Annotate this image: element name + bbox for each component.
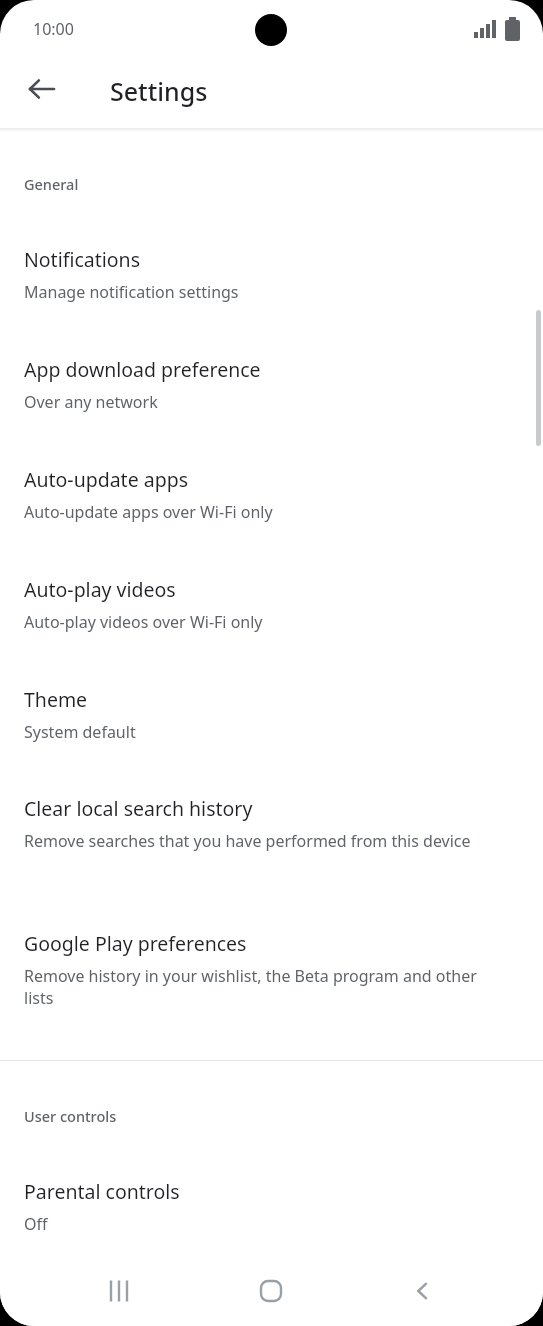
- staticText: Auto-play videos: [24, 576, 176, 603]
- staticText: Notifications: [24, 246, 140, 273]
- staticText: Theme: [24, 686, 88, 713]
- staticText: Remove history in your wishlist, the Bet…: [24, 965, 494, 1009]
- button[interactable]: Google Play preferences: [0, 920, 543, 1030]
- button[interactable]: Home: [236, 1256, 306, 1326]
- staticText: Settings: [110, 74, 208, 108]
- staticText: User controls: [24, 1106, 117, 1126]
- staticText: Auto-update apps over Wi-Fi only: [24, 501, 273, 523]
- button[interactable]: Back: [16, 63, 68, 115]
- button[interactable]: App download preference: [0, 346, 543, 456]
- staticText: General: [24, 174, 79, 194]
- button[interactable]: Auto-update apps: [0, 456, 543, 566]
- button[interactable]: Notifications: [0, 236, 543, 346]
- staticText: Remove searches that you have performed …: [24, 830, 471, 852]
- staticText: App download preference: [24, 356, 261, 383]
- staticText: Auto-update apps: [24, 466, 188, 493]
- staticText: Google Play preferences: [24, 930, 247, 957]
- staticText: Clear local search history: [24, 795, 253, 822]
- staticText: Auto-play videos over Wi-Fi only: [24, 611, 263, 633]
- button[interactable]: Clear local search history: [0, 785, 543, 895]
- staticText: 10:00: [33, 18, 74, 40]
- staticText: Off: [24, 1213, 48, 1235]
- staticText: Manage notification settings: [24, 281, 239, 303]
- button[interactable]: Parental controls: [0, 1168, 543, 1278]
- staticText: Over any network: [24, 391, 158, 413]
- button[interactable]: Auto-play videos: [0, 566, 543, 676]
- staticText: System default: [24, 721, 136, 743]
- button[interactable]: Recent apps: [85, 1256, 155, 1326]
- staticText: Parental controls: [24, 1178, 180, 1205]
- button[interactable]: Back: [388, 1256, 458, 1326]
- button[interactable]: Theme: [0, 676, 543, 786]
